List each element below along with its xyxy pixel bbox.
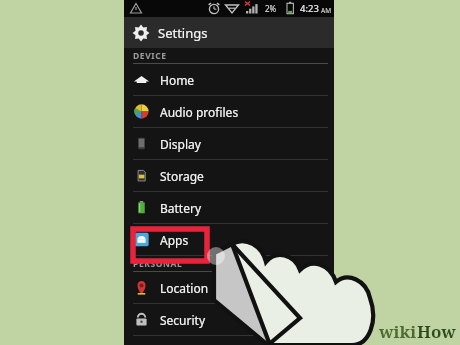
button[interactable]: Home	[124, 64, 334, 96]
button[interactable]: Display	[124, 128, 334, 160]
staticText: wiki	[379, 320, 417, 343]
button[interactable]: Audio profiles	[124, 96, 334, 128]
staticText: Storage	[160, 168, 204, 184]
staticText: 2%	[265, 3, 277, 14]
staticText: 4:23	[300, 2, 319, 15]
button[interactable]: Apps	[124, 224, 334, 256]
staticText: Display	[160, 136, 201, 152]
staticText: Battery	[160, 200, 202, 216]
button[interactable]: Security	[124, 304, 334, 336]
button[interactable]: Settings	[124, 17, 334, 48]
staticText: How	[417, 320, 456, 343]
staticText: Home	[160, 72, 195, 88]
button[interactable]: Location	[124, 272, 334, 304]
staticText: Security	[160, 312, 206, 328]
staticText: AM	[321, 6, 332, 15]
staticText: Settings	[158, 24, 208, 42]
button[interactable]: Storage	[124, 160, 334, 192]
staticText: PERSONAL	[133, 258, 183, 270]
staticText: DEVICE	[133, 50, 167, 62]
staticText: Apps	[160, 232, 189, 248]
staticText: Audio profiles	[160, 104, 239, 120]
staticText: Location	[160, 280, 209, 296]
button[interactable]: Battery	[124, 192, 334, 224]
